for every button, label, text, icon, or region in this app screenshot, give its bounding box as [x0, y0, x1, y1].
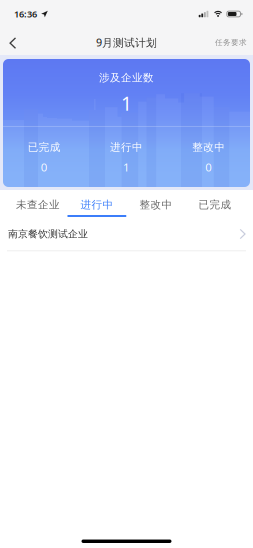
staticText: 9月测试计划	[96, 35, 157, 50]
staticText: 涉及企业数	[99, 71, 154, 84]
staticText: 16:36	[14, 8, 37, 20]
staticText: 进行中	[110, 141, 143, 154]
staticText: 已完成	[28, 141, 61, 154]
staticText: 已完成	[198, 198, 231, 211]
button[interactable]: 南京餐饮测试企业	[0, 218, 253, 250]
button[interactable]: 未查企业	[8, 190, 67, 218]
button[interactable]: 整改中	[126, 190, 185, 218]
staticText: 任务要求	[215, 38, 247, 47]
staticText: 整改中	[192, 141, 225, 154]
button[interactable]: 任务要求	[209, 28, 253, 57]
staticText: 南京餐饮测试企业	[8, 228, 88, 240]
staticText: 0	[205, 159, 212, 175]
button[interactable]: 已完成	[185, 190, 244, 218]
staticText: 1	[123, 159, 130, 175]
button[interactable]: 进行中	[67, 190, 126, 218]
button[interactable]: Back	[0, 28, 26, 58]
staticText: 1	[121, 90, 132, 116]
staticText: 0	[41, 159, 48, 175]
staticText: 进行中	[80, 198, 113, 211]
staticText: 未查企业	[16, 198, 60, 211]
staticText: 整改中	[139, 198, 172, 211]
